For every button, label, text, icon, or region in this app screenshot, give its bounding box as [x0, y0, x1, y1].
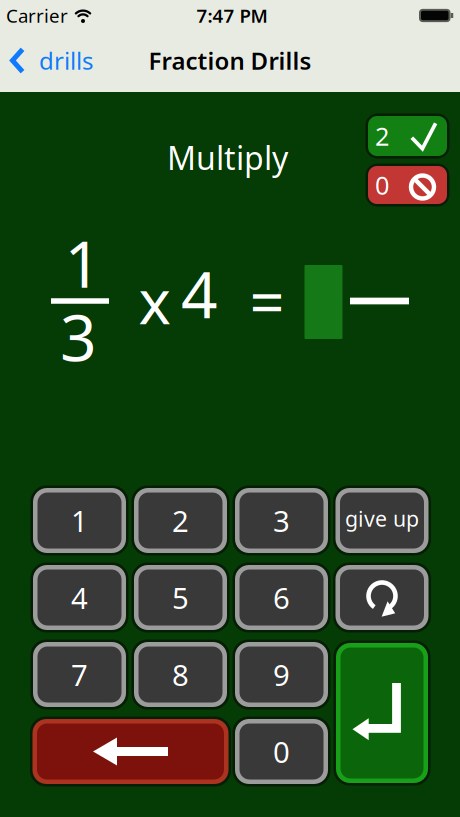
staticText: 0	[375, 168, 389, 202]
staticText: Carrier	[6, 3, 68, 28]
button[interactable]: 5	[131, 562, 229, 632]
staticText: 3	[273, 501, 290, 540]
button[interactable]: 4	[30, 562, 128, 632]
button[interactable]: Enter answer	[333, 640, 430, 785]
button[interactable]: Correct answers	[365, 113, 449, 158]
staticText: 3	[60, 294, 97, 379]
button[interactable]: 2	[131, 485, 229, 555]
staticText: 8	[172, 655, 189, 694]
button[interactable]: Back to drills	[0, 45, 93, 76]
button[interactable]: 9	[232, 639, 330, 709]
staticText: 5	[172, 578, 189, 617]
button[interactable]: Backspace	[30, 716, 231, 786]
staticText: 4	[181, 251, 218, 336]
button[interactable]: give up	[333, 485, 431, 555]
button[interactable]: Wrong answers	[365, 163, 449, 206]
button[interactable]: New problem	[333, 562, 431, 632]
staticText: 1	[71, 501, 88, 540]
staticText: 0	[273, 732, 290, 771]
staticText: 2	[375, 119, 389, 153]
staticText: Multiply	[167, 136, 288, 179]
button[interactable]: 1	[30, 485, 128, 555]
button[interactable]: 0	[232, 716, 330, 786]
staticText: 2	[172, 501, 189, 540]
staticText: 4	[71, 578, 88, 617]
staticText: 7:47 PM	[196, 3, 267, 28]
button[interactable]: 8	[131, 639, 229, 709]
staticText: 7	[71, 655, 88, 694]
button[interactable]: 6	[232, 562, 330, 632]
button[interactable]: 3	[232, 485, 330, 555]
staticText: Fraction Drills	[148, 45, 311, 76]
button[interactable]: 7	[30, 639, 128, 709]
staticText: =	[249, 261, 284, 342]
staticText: drills	[39, 45, 93, 76]
staticText: 6	[273, 578, 290, 617]
staticText: x	[138, 260, 170, 341]
staticText: 1	[64, 220, 101, 305]
staticText: give up	[345, 504, 419, 533]
staticText: 9	[273, 655, 290, 694]
